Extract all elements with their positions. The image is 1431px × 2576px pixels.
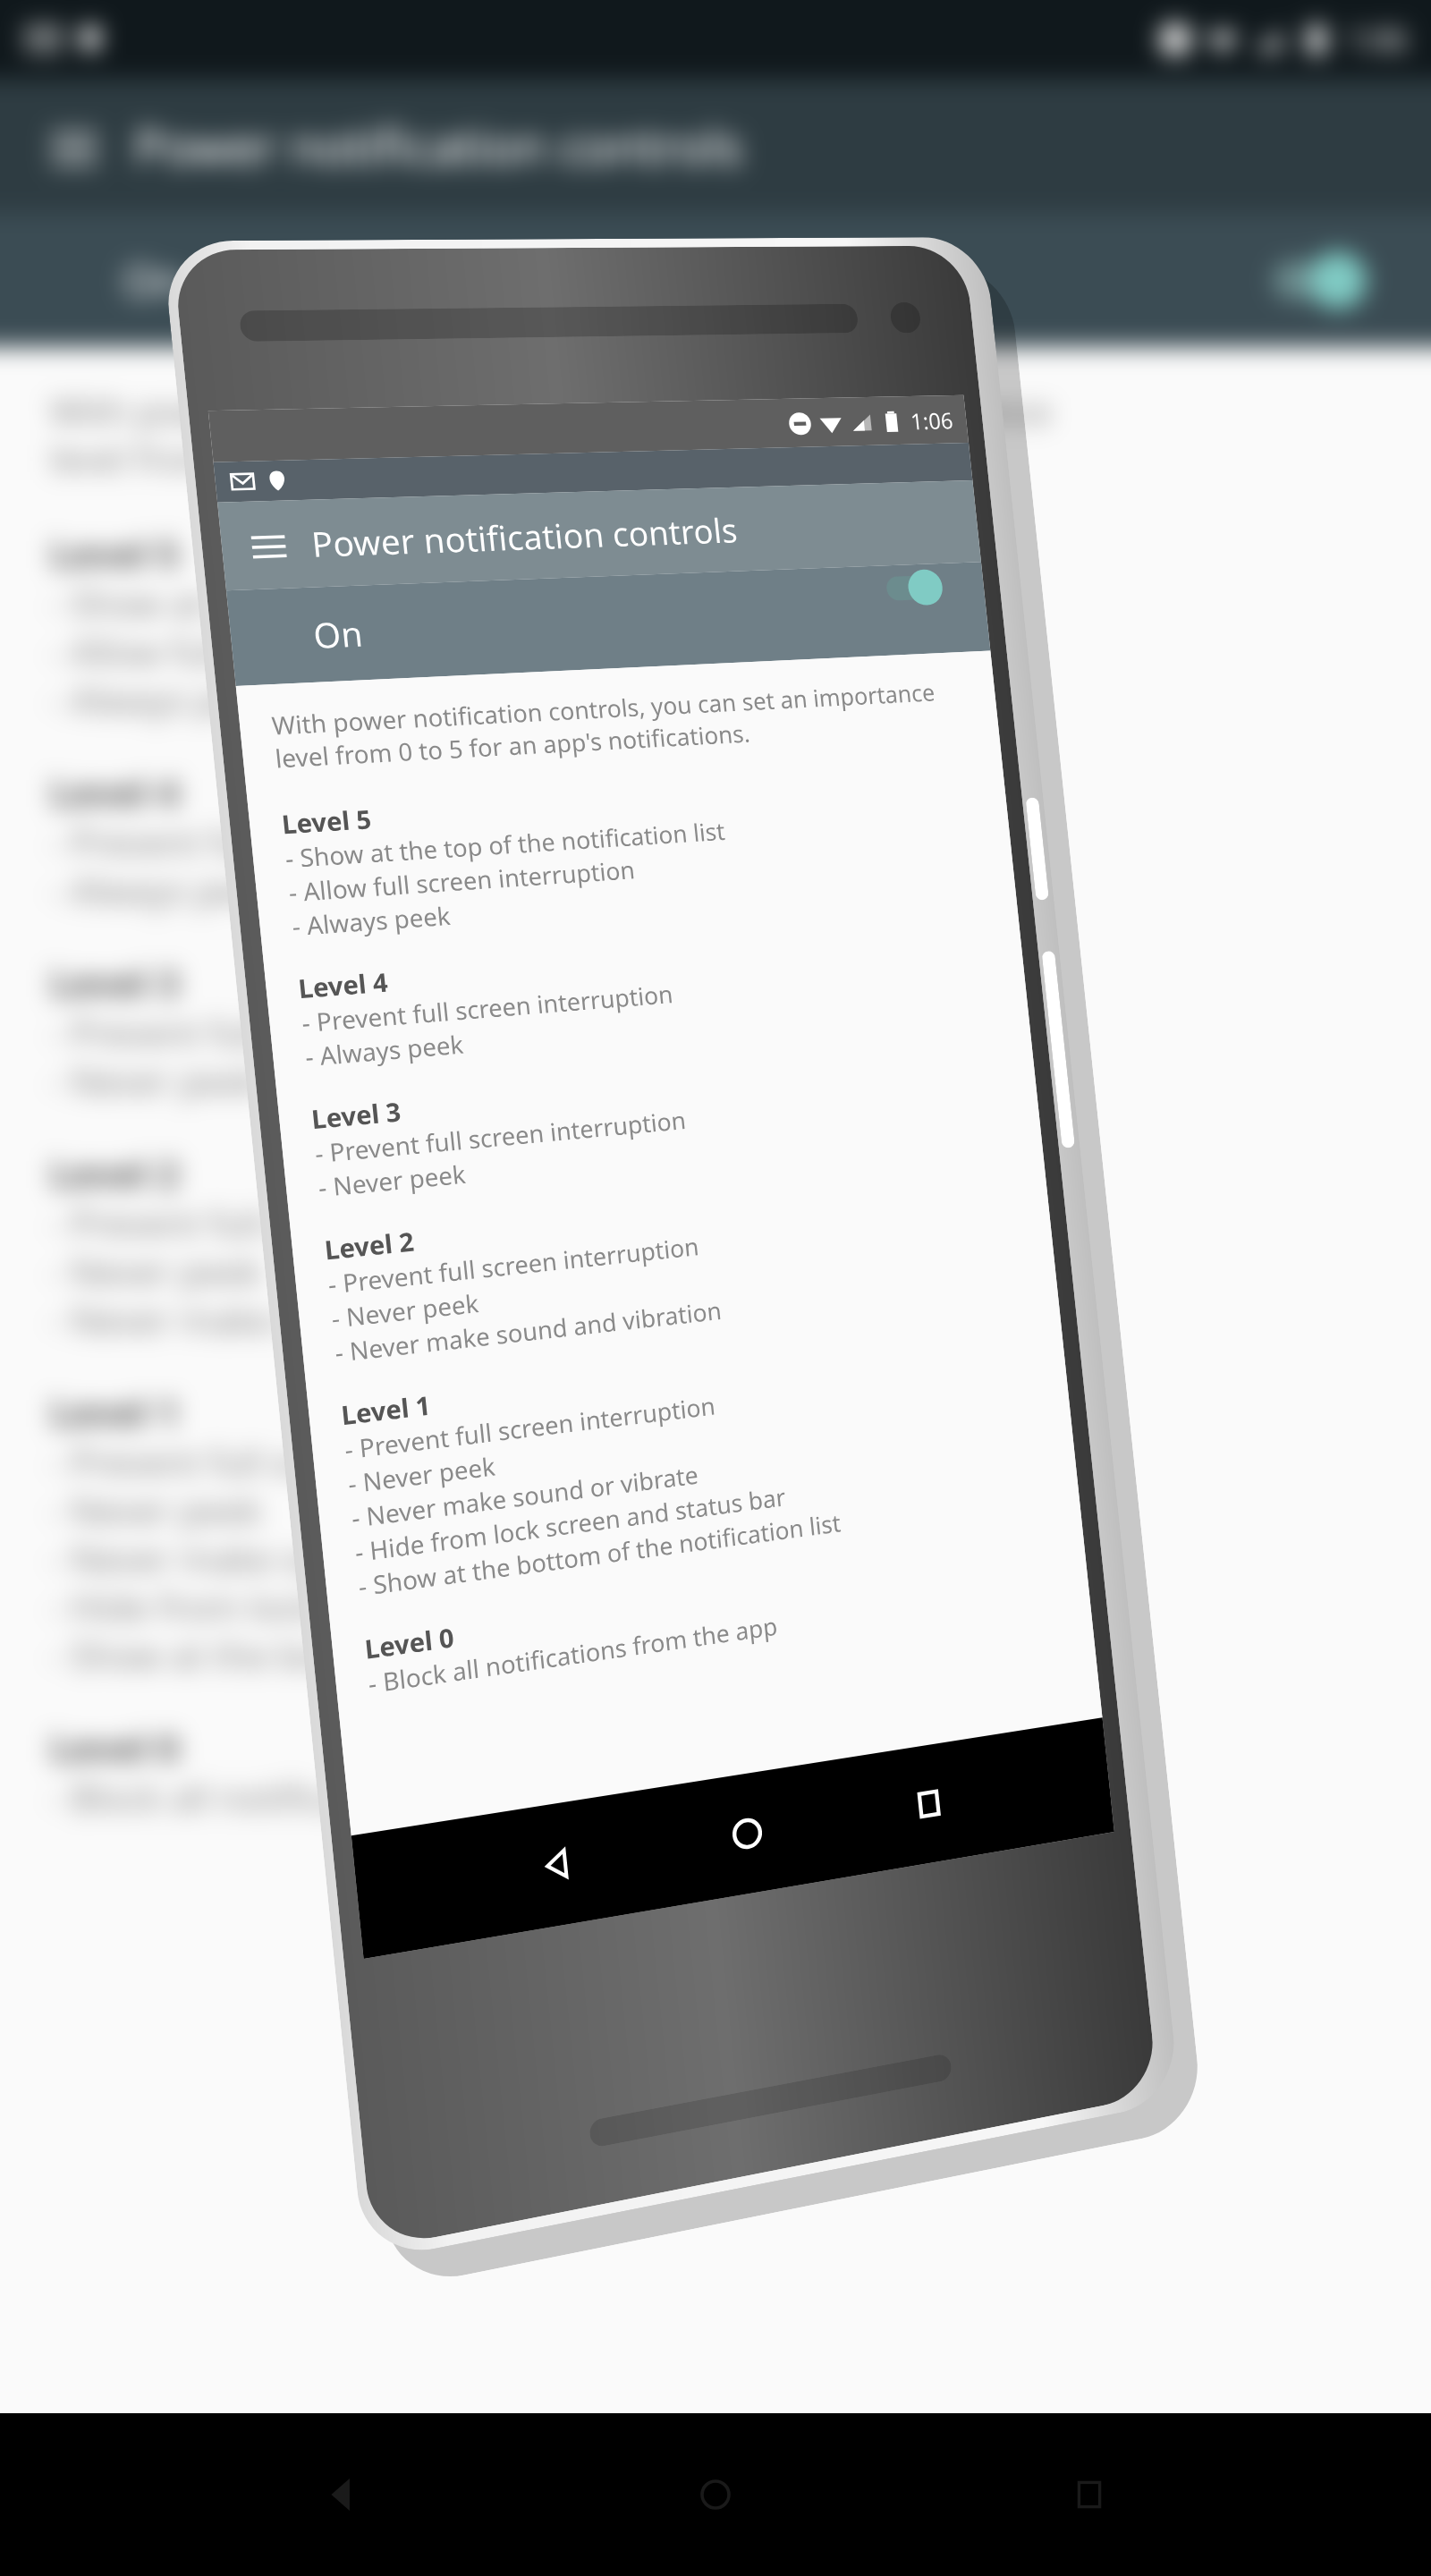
staticText: Level 3 — [50, 957, 180, 1008]
staticText: On — [123, 251, 184, 309]
button[interactable]: Menu — [242, 520, 295, 569]
staticText: Level 0 — [363, 1619, 456, 1667]
staticText: Level 2 — [323, 1223, 416, 1267]
staticText: Level 5 — [50, 528, 180, 579]
staticText: - Never peek — [317, 1157, 467, 1205]
button[interactable]: Recents — [1058, 2463, 1121, 2526]
staticText: Power notification controls — [134, 113, 743, 179]
staticText: - Always peek — [50, 675, 278, 724]
staticText: - Prevent full screen interruption — [50, 1199, 596, 1247]
staticText: Level 0 — [50, 1722, 180, 1773]
staticText: - Always peek — [303, 1027, 465, 1074]
button[interactable]: On — [226, 562, 990, 686]
staticText: - Prevent full screen interruption — [50, 1008, 596, 1056]
staticText: 1:06 — [909, 405, 955, 436]
staticText: Level 5 — [280, 801, 373, 841]
button[interactable]: Back — [311, 2463, 374, 2526]
staticText: Level 2 — [50, 1148, 180, 1199]
staticText: - Never peek — [50, 1056, 262, 1105]
staticText: On — [311, 609, 365, 658]
staticText: - Never make sound and vibration — [50, 1295, 620, 1343]
staticText: - Show at the bottom of the notification… — [50, 1631, 768, 1679]
staticText: With power notification controls, you ca… — [270, 676, 940, 775]
staticText: - Never make sound and vibration — [333, 1293, 723, 1370]
button[interactable]: Recents — [899, 1771, 959, 1837]
staticText: - Never peek — [346, 1449, 497, 1501]
staticText: - Prevent full screen interruption — [326, 1229, 701, 1301]
staticText: - Show at the bottom of the notification… — [357, 1506, 842, 1604]
staticText: - Show at the top of the notification li… — [284, 814, 727, 875]
button[interactable]: Volume — [1041, 951, 1075, 1148]
staticText: Level 1 — [50, 1386, 180, 1437]
staticText: - Block all notifications from the app — [367, 1609, 779, 1701]
staticText: - Prevent full screen interruption — [343, 1388, 717, 1467]
staticText: Level 4 — [297, 964, 390, 1006]
staticText: - Allow full screen interruption — [50, 627, 557, 675]
staticText: - Hide from lock screen and status bar — [50, 1582, 688, 1631]
staticText: - Allow full screen interruption — [287, 853, 637, 909]
button[interactable]: Back — [526, 1831, 590, 1899]
staticText: - Never peek — [50, 1486, 262, 1534]
staticText: Level 1 — [340, 1387, 433, 1432]
staticText: - Prevent full screen interruption — [50, 1437, 596, 1486]
button[interactable]: Home — [684, 2463, 747, 2526]
staticText: - Hide from lock screen and status bar — [353, 1480, 787, 1569]
staticText: - Block all notifications from the app — [50, 1773, 656, 1821]
staticText: - Prevent full screen interruption — [313, 1103, 688, 1170]
staticText: With power notification controls, you ca… — [50, 386, 1052, 483]
button[interactable]: Home — [716, 1800, 778, 1867]
staticText: - Prevent full screen interruption — [300, 977, 675, 1040]
staticText: - Never peek — [50, 1247, 262, 1295]
button[interactable]: Power — [1025, 797, 1049, 900]
staticText: 1:06 — [1347, 19, 1408, 60]
button[interactable]: Menu — [41, 113, 107, 179]
button[interactable]: Toggle — [1273, 249, 1376, 312]
button[interactable]: On — [0, 213, 1431, 347]
staticText: - Never make sound or vibrate — [350, 1457, 700, 1535]
button[interactable]: Toggle — [885, 567, 950, 609]
staticText: Level 3 — [310, 1094, 403, 1136]
staticText: - Never make sound or vibrate — [50, 1534, 559, 1582]
staticText: - Prevent full screen interruption — [50, 818, 596, 866]
staticText: Level 4 — [50, 767, 180, 818]
staticText: - Always peek — [290, 898, 452, 943]
staticText: Power notification controls — [309, 507, 739, 567]
staticText: - Show at the top of the notification li… — [50, 579, 700, 627]
staticText: - Never peek — [330, 1286, 481, 1335]
staticText: - Always peek — [50, 866, 278, 914]
